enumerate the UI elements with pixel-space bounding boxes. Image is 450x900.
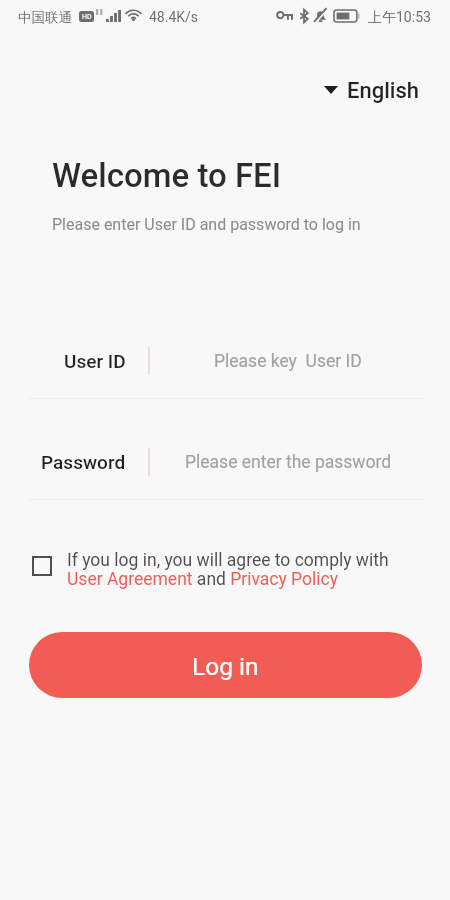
button[interactable]: Log in — [29, 632, 422, 698]
staticText: Please enter User ID and password to log… — [52, 215, 361, 234]
button[interactable]: Agree to terms checkbox — [32, 556, 52, 576]
staticText: 48.4K/s — [149, 9, 199, 25]
staticText: Log in — [192, 652, 259, 681]
staticText: English — [347, 78, 419, 104]
button[interactable]: English — [320, 73, 423, 109]
staticText: User ID — [64, 350, 126, 372]
staticText: Please enter the password — [185, 452, 392, 473]
staticText: 上午10:53 — [368, 9, 431, 27]
staticText: HD — [82, 13, 92, 21]
button[interactable]: Password input field — [0, 441, 450, 483]
staticText: 中国联通 — [18, 9, 72, 26]
staticText: Please key User ID — [214, 351, 362, 372]
staticText: Password — [41, 451, 126, 473]
button[interactable]: If you log in, you will agree to comply … — [67, 550, 389, 589]
staticText: Welcome to FEI — [52, 156, 282, 195]
button[interactable]: User ID input field — [0, 340, 450, 382]
